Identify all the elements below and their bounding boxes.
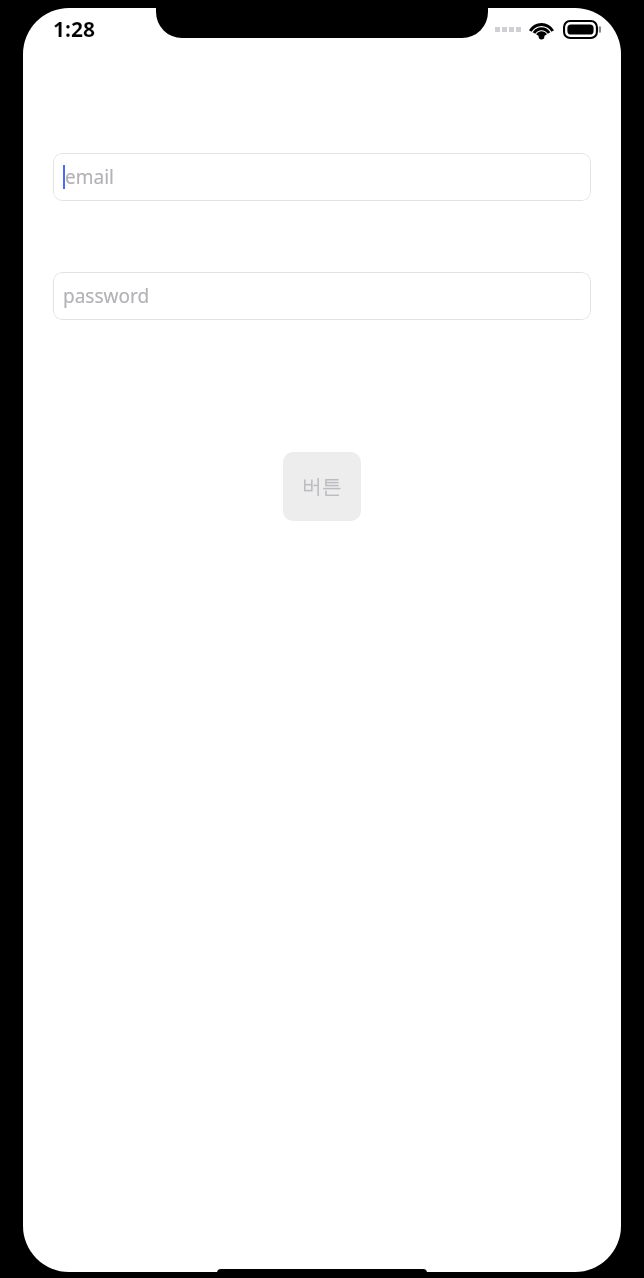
staticText: email: [65, 164, 114, 190]
staticText: password: [63, 283, 150, 309]
staticText: 1:28: [53, 15, 95, 44]
button[interactable]: password: [53, 272, 591, 320]
staticText: 버튼: [302, 474, 342, 499]
button[interactable]: 버튼: [283, 452, 361, 521]
button[interactable]: email: [53, 153, 591, 201]
